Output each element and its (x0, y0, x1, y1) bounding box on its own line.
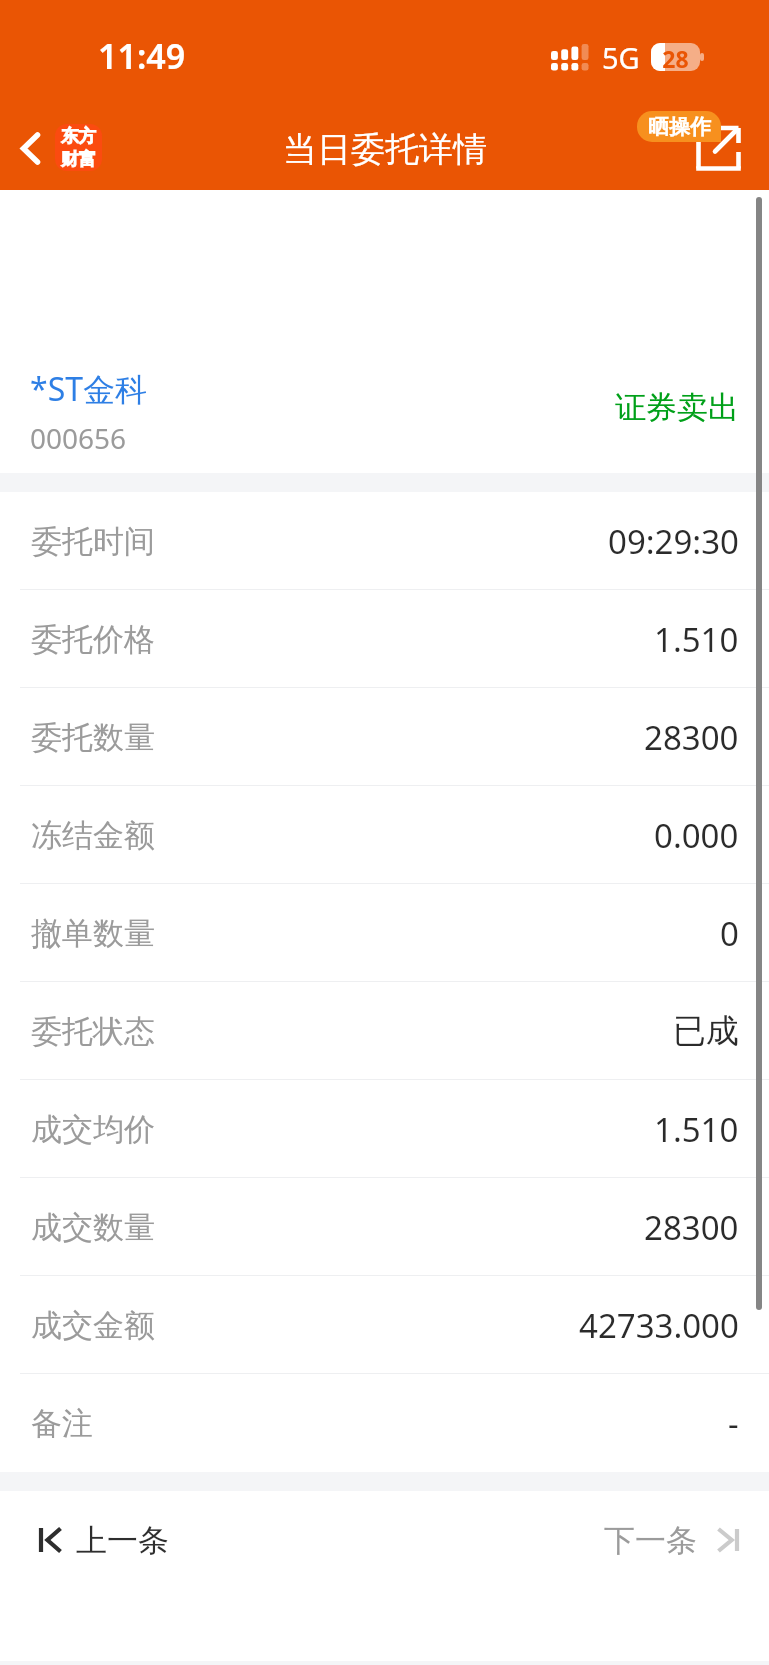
staticText: 28 (662, 43, 689, 71)
button[interactable]: 备注 (0, 1374, 769, 1472)
staticText: 委托状态 (31, 1012, 155, 1051)
staticText: 上一条 (76, 1521, 169, 1560)
staticText: 成交金额 (31, 1306, 155, 1345)
button[interactable]: 成交金额 (0, 1276, 769, 1374)
staticText: 证券卖出 (615, 388, 739, 427)
staticText: 成交均价 (31, 1110, 155, 1149)
staticText: 000656 (30, 419, 127, 457)
staticText: 备注 (31, 1404, 93, 1443)
staticText: 已成 (673, 1010, 739, 1052)
staticText: 1.510 (654, 617, 739, 662)
staticText: *ST金科 (30, 367, 147, 411)
staticText: - (728, 1401, 739, 1446)
button[interactable]: 成交数量 (0, 1178, 769, 1276)
button[interactable]: East Money (55, 124, 102, 171)
staticText: 委托时间 (31, 522, 155, 561)
button[interactable]: 委托价格 (0, 590, 769, 688)
staticText: 撤单数量 (31, 914, 155, 953)
staticText: 东方 (61, 125, 96, 147)
button[interactable]: Share (694, 124, 744, 174)
staticText: 09:29:30 (608, 519, 739, 564)
staticText: 0 (720, 911, 739, 956)
button[interactable]: *ST金科 (0, 355, 769, 473)
button[interactable]: 委托数量 (0, 688, 769, 786)
button[interactable]: 成交均价 (0, 1080, 769, 1178)
staticText: 28300 (644, 1205, 739, 1250)
button[interactable]: 冻结金额 (0, 786, 769, 884)
staticText: 财富 (61, 148, 96, 170)
staticText: 冻结金额 (31, 816, 155, 855)
staticText: 0.000 (654, 813, 739, 858)
button[interactable]: 撤单数量 (0, 884, 769, 982)
staticText: 晒操作 (648, 114, 711, 140)
staticText: 11:49 (98, 33, 186, 79)
staticText: 委托数量 (31, 718, 155, 757)
button[interactable]: 晒操作 (637, 111, 721, 142)
button[interactable]: 委托状态 (0, 982, 769, 1080)
staticText: 28300 (644, 715, 739, 760)
staticText: 成交数量 (31, 1208, 155, 1247)
button[interactable]: 下一条 (604, 1496, 769, 1584)
staticText: 当日委托详情 (283, 128, 487, 171)
button[interactable]: Back (2, 120, 58, 176)
button[interactable]: 委托时间 (0, 492, 769, 590)
staticText: 42733.000 (579, 1303, 739, 1348)
button[interactable]: 上一条 (0, 1496, 385, 1584)
staticText: 委托价格 (31, 620, 155, 659)
staticText: 下一条 (604, 1521, 697, 1560)
staticText: 1.510 (654, 1107, 739, 1152)
staticText: 5G (602, 38, 640, 77)
